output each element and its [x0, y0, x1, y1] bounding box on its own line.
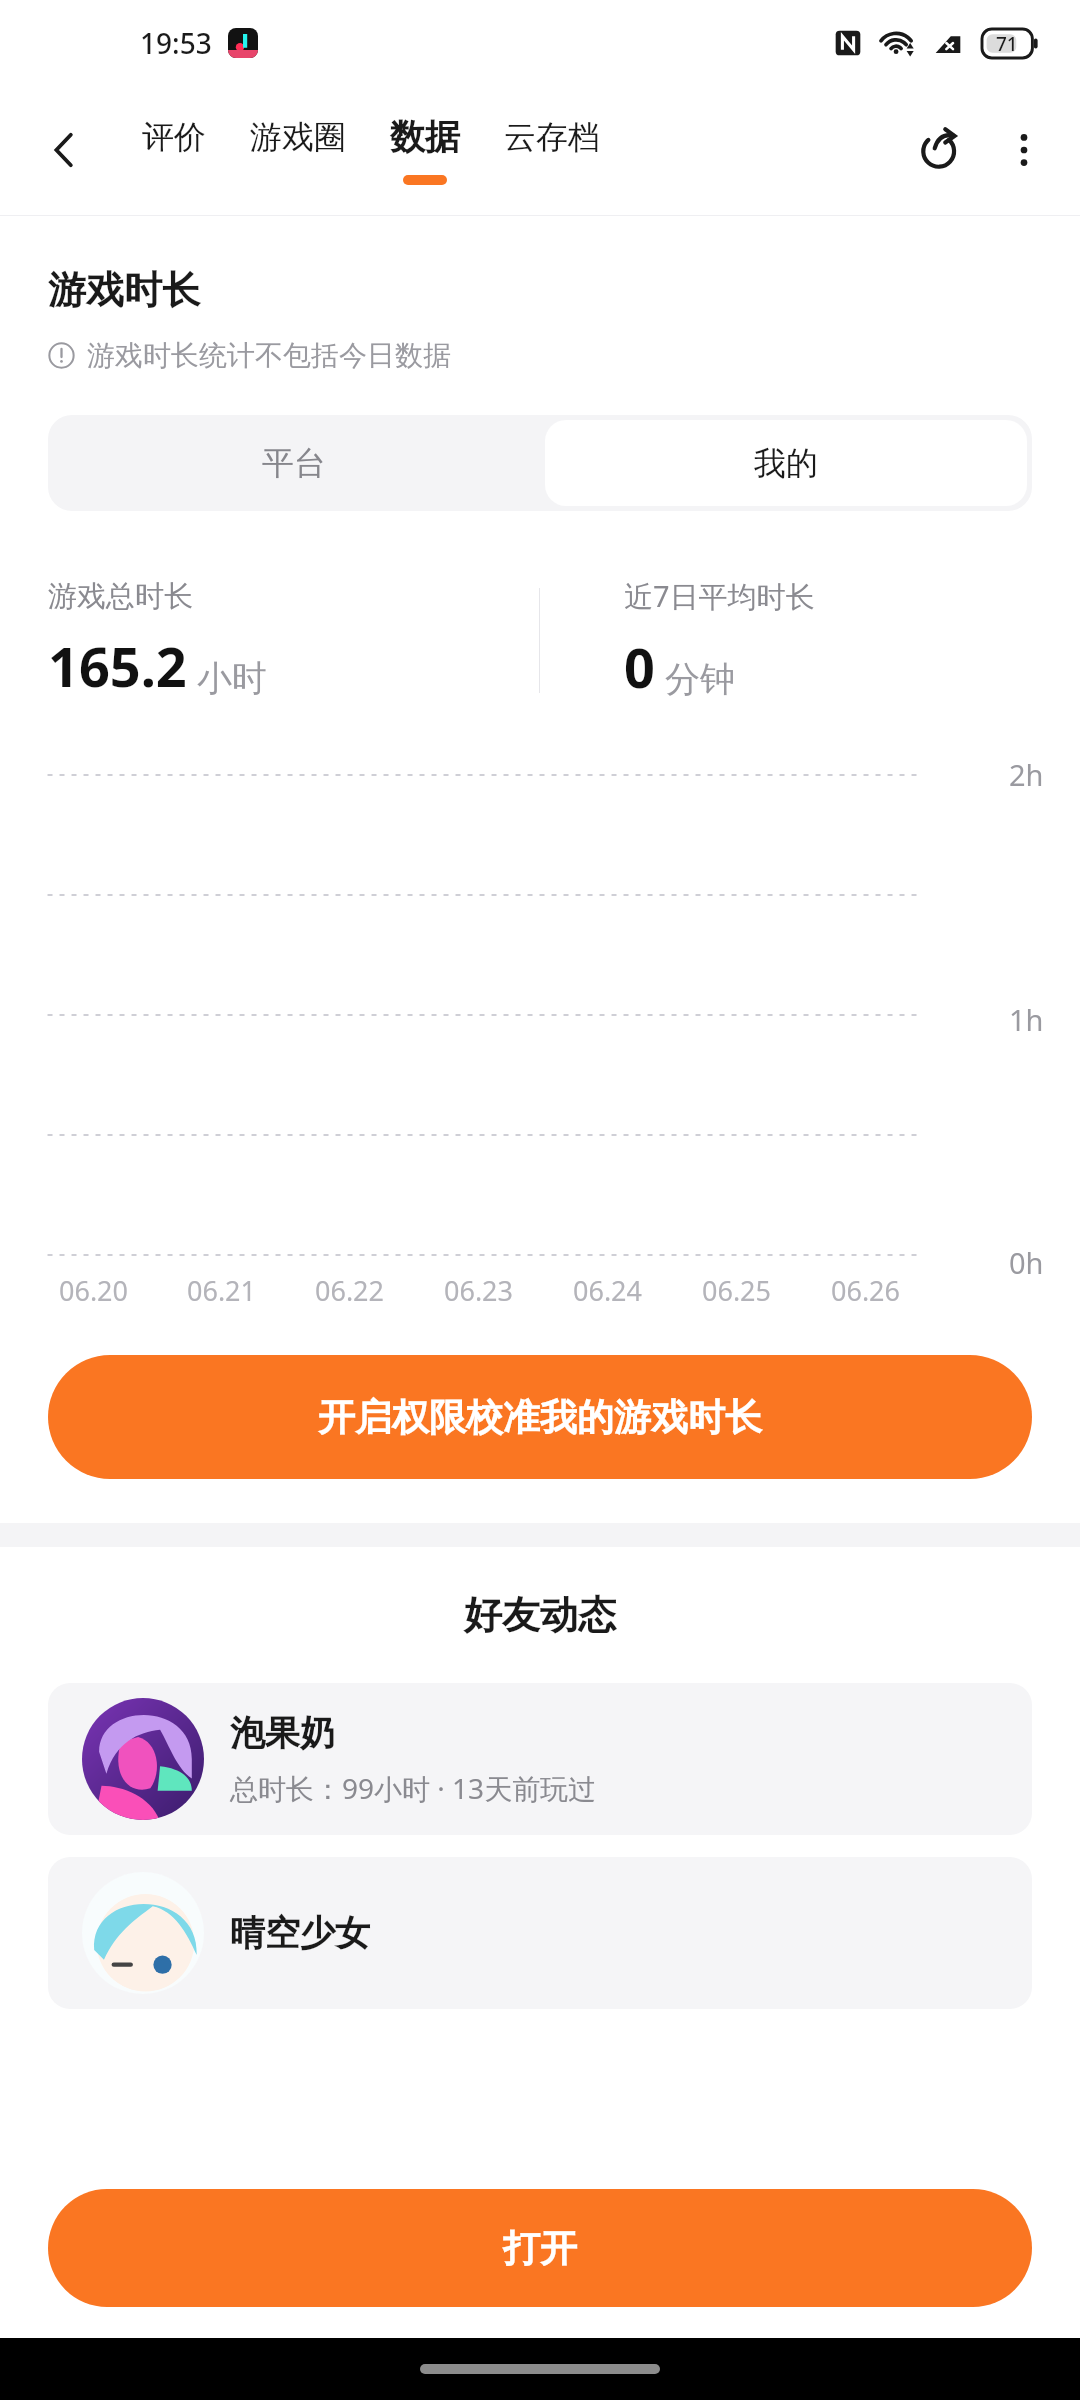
- button[interactable]: 晴空少女: [48, 1857, 1032, 2009]
- button[interactable]: 泡果奶: [48, 1683, 1032, 1835]
- button[interactable]: 评价: [120, 109, 228, 191]
- button[interactable]: 开启权限校准我的游戏时长: [48, 1355, 1032, 1479]
- staticText: 06.23: [444, 1272, 514, 1309]
- staticText: 近7日平均时长: [624, 576, 815, 616]
- staticText: 2h: [1009, 755, 1044, 794]
- staticText: 总时长：99小时 · 13天前玩过: [230, 1769, 597, 1807]
- staticText: 打开: [503, 2225, 577, 2272]
- staticText: 游戏时长统计不包括今日数据: [87, 338, 451, 373]
- staticText: 1h: [1009, 1000, 1044, 1039]
- staticText: 我的: [754, 443, 818, 483]
- staticText: 19:53: [140, 24, 212, 62]
- button[interactable]: 我的: [545, 420, 1027, 506]
- button[interactable]: 游戏圈: [228, 109, 368, 191]
- staticText: 泡果奶: [230, 1711, 335, 1755]
- staticText: 平台: [262, 443, 326, 483]
- staticText: 游戏圈: [250, 117, 346, 157]
- staticText: 开启权限校准我的游戏时长: [318, 1394, 762, 1441]
- button[interactable]: More options: [988, 114, 1060, 186]
- button[interactable]: 平台: [48, 415, 540, 511]
- staticText: 06.21: [187, 1272, 257, 1309]
- button[interactable]: 打开: [48, 2189, 1032, 2307]
- staticText: 游戏总时长: [48, 578, 193, 615]
- staticText: 165.2: [48, 629, 187, 703]
- staticText: 评价: [142, 117, 206, 157]
- staticText: 06.25: [702, 1272, 772, 1309]
- button[interactable]: 云存档: [482, 109, 622, 191]
- staticText: 好友动态: [464, 1591, 616, 1639]
- staticText: 分钟: [665, 657, 735, 701]
- staticText: 0h: [1009, 1243, 1044, 1282]
- staticText: 06.24: [573, 1272, 643, 1309]
- button[interactable]: 数据: [368, 107, 482, 193]
- staticText: 06.20: [59, 1272, 129, 1309]
- staticText: 数据: [390, 115, 460, 159]
- button[interactable]: Back: [28, 114, 100, 186]
- staticText: 云存档: [504, 117, 600, 157]
- staticText: 71: [996, 31, 1018, 57]
- staticText: 晴空少女: [230, 1911, 370, 1955]
- staticText: 0: [624, 630, 655, 704]
- staticText: 小时: [197, 656, 267, 700]
- button[interactable]: Share: [904, 114, 976, 186]
- staticText: 06.22: [315, 1272, 385, 1309]
- staticText: 游戏时长: [48, 266, 200, 314]
- staticText: 06.26: [831, 1272, 901, 1309]
